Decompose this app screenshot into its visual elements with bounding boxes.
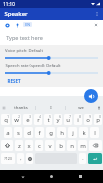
staticText: r — [37, 116, 40, 124]
button[interactable]: g — [46, 127, 55, 138]
button[interactable]: d — [24, 127, 33, 138]
button[interactable]: n — [67, 140, 76, 151]
button[interactable]: v — [45, 140, 54, 151]
button[interactable]: 0 — [94, 114, 102, 125]
staticText: l — [94, 129, 96, 137]
staticText: u — [66, 116, 70, 124]
staticText: n — [70, 142, 74, 150]
staticText: y — [56, 116, 60, 124]
staticText: a — [6, 129, 10, 137]
staticText: ?123 — [4, 156, 12, 161]
button[interactable]: Backspace — [89, 140, 102, 151]
button[interactable]: Close — [92, 21, 100, 29]
button[interactable]: Speak — [84, 89, 98, 103]
button[interactable]: b — [56, 140, 65, 151]
button[interactable]: 3 — [23, 114, 32, 125]
button[interactable]: Settings — [3, 21, 11, 29]
staticText: k — [82, 129, 86, 137]
staticText: Type text here — [6, 34, 43, 41]
button[interactable]: Change language — [26, 153, 33, 164]
button[interactable]: l — [90, 127, 99, 138]
staticText: o — [86, 116, 90, 124]
staticText: i — [77, 116, 79, 124]
button[interactable]: Voice input — [95, 104, 103, 112]
staticText: 6 — [59, 115, 61, 119]
button[interactable]: More options — [91, 8, 103, 20]
button[interactable]: Type text here — [0, 29, 103, 45]
button[interactable]: 1 — [1, 114, 10, 125]
staticText: w — [14, 116, 19, 124]
staticText: f — [38, 129, 41, 137]
staticText: z — [18, 142, 21, 150]
staticText: 11:10 — [3, 1, 15, 7]
button[interactable]: 7 — [64, 114, 72, 125]
button[interactable]: I — [36, 104, 65, 112]
staticText: j — [72, 129, 74, 137]
staticText: I — [50, 105, 52, 111]
button[interactable]: Back — [16, 170, 29, 183]
staticText: 4 — [39, 115, 41, 119]
button[interactable]: Home — [45, 170, 58, 183]
button[interactable]: m — [78, 140, 87, 151]
button[interactable]: 2 — [12, 114, 21, 125]
button[interactable]: Shift — [1, 140, 13, 151]
staticText: 5 — [49, 115, 51, 119]
button[interactable]: 9 — [84, 114, 92, 125]
staticText: e — [26, 116, 30, 124]
staticText: 1 — [7, 115, 9, 119]
staticText: , — [20, 155, 22, 162]
button[interactable]: , — [17, 153, 24, 164]
staticText: x — [27, 142, 31, 150]
staticText: Speaker — [4, 10, 28, 18]
staticText: g — [49, 129, 53, 137]
button[interactable]: a — [4, 127, 12, 138]
button[interactable]: Recent apps — [74, 170, 87, 183]
staticText: EN — [25, 22, 30, 27]
staticText: 3 — [29, 115, 31, 119]
staticText: 7 — [69, 115, 71, 119]
staticText: 0 — [99, 115, 101, 119]
button[interactable]: 8 — [74, 114, 82, 125]
button[interactable]: s — [14, 127, 22, 138]
staticText: v — [48, 142, 52, 150]
button[interactable]: ?123 — [1, 153, 15, 164]
button[interactable]: thanks — [7, 104, 35, 112]
button[interactable]: RESET — [5, 77, 23, 85]
button[interactable]: Microphone — [13, 21, 21, 29]
button[interactable]: k — [79, 127, 88, 138]
button[interactable]: c — [35, 140, 43, 151]
staticText: b — [59, 142, 63, 150]
button[interactable]: we — [66, 104, 95, 112]
staticText: Speech rate (speed): Default — [5, 63, 61, 69]
button[interactable]: Speech rate (speed): Default — [5, 63, 98, 75]
staticText: q — [4, 116, 8, 124]
staticText: 9 — [89, 115, 91, 119]
button[interactable]: h — [57, 127, 66, 138]
button[interactable]: 6 — [54, 114, 62, 125]
staticText: d — [27, 129, 31, 137]
staticText: p — [96, 116, 100, 124]
staticText: h — [60, 129, 64, 137]
staticText: . — [82, 155, 84, 162]
staticText: t — [47, 116, 50, 124]
button[interactable]: Expand toolbar — [0, 104, 7, 112]
button[interactable]: z — [15, 140, 23, 151]
staticText: 2 — [18, 115, 20, 119]
button[interactable]: Enter — [88, 153, 102, 164]
button[interactable]: j — [68, 127, 77, 138]
button[interactable]: Voice pitch: Default — [5, 48, 98, 60]
staticText: c — [38, 142, 41, 150]
button[interactable]: f — [35, 127, 44, 138]
button[interactable]: x — [25, 140, 33, 151]
staticText: s — [17, 129, 20, 137]
staticText: RESET — [7, 78, 21, 84]
button[interactable]: 4 — [34, 114, 42, 125]
button[interactable]: . — [79, 153, 86, 164]
button[interactable]: 5 — [44, 114, 52, 125]
staticText: we — [78, 105, 84, 111]
staticText: thanks — [14, 105, 28, 111]
button[interactable]: Language — [23, 22, 32, 27]
staticText: 8 — [79, 115, 81, 119]
staticText: m — [80, 142, 86, 150]
